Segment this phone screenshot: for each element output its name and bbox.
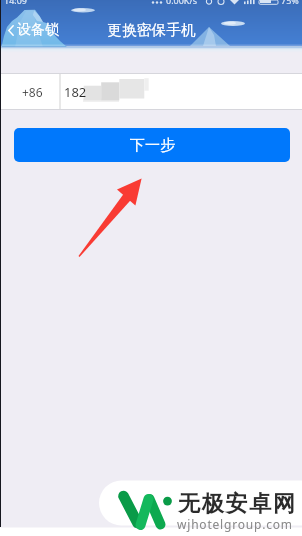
button[interactable]: 下一步 [14, 128, 290, 162]
staticText: wjhotelgroup.com [177, 516, 293, 532]
button[interactable]: 无极安卓网 [177, 490, 302, 534]
staticText: 无极安卓网 [177, 490, 296, 518]
staticText: 182 [64, 83, 87, 101]
staticText: 14:09 [4, 0, 28, 6]
staticText: 下一步 [130, 136, 175, 155]
button[interactable]: +86 [0, 73, 302, 110]
staticText: 设备锁 [17, 21, 59, 39]
staticText: 更换密保手机 [107, 21, 196, 40]
staticText: +86 [22, 84, 43, 100]
staticText: 0.00K/s [166, 0, 198, 6]
button[interactable]: 设备锁 [5, 17, 67, 43]
staticText: 75% [281, 0, 299, 6]
